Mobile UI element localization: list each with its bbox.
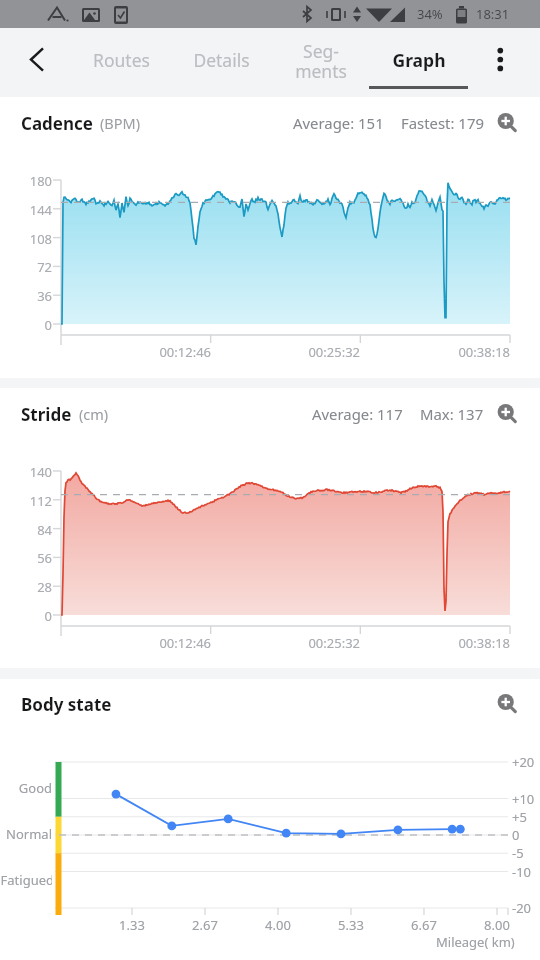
button[interactable]: Zoom in: [489, 108, 519, 138]
staticText: Routes: [93, 48, 150, 72]
staticText: Max: 137: [420, 404, 484, 424]
staticText: 8.00: [467, 916, 527, 934]
staticText: Seg- ments: [295, 39, 347, 84]
button[interactable]: More options: [476, 28, 528, 97]
staticText: (cm): [79, 404, 109, 424]
button[interactable]: Details: [172, 28, 271, 97]
staticText: Normal: [0, 825, 52, 843]
staticText: 0: [0, 316, 52, 334]
staticText: -5: [512, 844, 524, 862]
staticText: 00:38:18: [430, 634, 510, 652]
staticText: Average: 117: [312, 404, 403, 424]
staticText: 4.00: [248, 916, 308, 934]
staticText: 6.67: [394, 916, 454, 934]
staticText: 00:12:46: [131, 343, 211, 361]
staticText: 0: [0, 607, 52, 625]
staticText: Details: [193, 48, 250, 72]
staticText: 108: [0, 230, 52, 248]
staticText: Stride: [21, 403, 72, 426]
staticText: Cadence: [21, 112, 93, 135]
staticText: Body state: [21, 693, 112, 716]
staticText: +10: [512, 790, 535, 808]
staticText: -20: [512, 899, 532, 917]
staticText: 56: [0, 549, 52, 567]
staticText: 28: [0, 578, 52, 596]
staticText: 112: [0, 492, 52, 510]
staticText: 36: [0, 287, 52, 305]
staticText: Average: 151: [293, 113, 384, 133]
staticText: 180: [0, 172, 52, 190]
staticText: 0: [512, 826, 520, 844]
staticText: Mileage( km): [436, 933, 515, 951]
staticText: (BPM): [100, 113, 141, 133]
staticText: 5.33: [321, 916, 381, 934]
staticText: Good: [0, 779, 52, 797]
staticText: 1.33: [102, 916, 162, 934]
staticText: +5: [512, 808, 527, 826]
staticText: 00:25:32: [280, 634, 360, 652]
staticText: Graph: [392, 48, 446, 72]
button[interactable]: Back: [12, 28, 64, 97]
staticText: 140: [0, 463, 52, 481]
button[interactable]: Zoom in: [489, 689, 519, 719]
staticText: 144: [0, 201, 52, 219]
button[interactable]: Zoom in: [489, 399, 519, 429]
staticText: Fatigued: [0, 871, 52, 889]
staticText: Fastest: 179: [401, 113, 484, 133]
staticText: -10: [512, 863, 532, 881]
staticText: 34%: [417, 5, 443, 23]
button[interactable]: Seg- ments: [271, 28, 370, 97]
staticText: 18:31: [476, 5, 510, 23]
staticText: 00:25:32: [280, 343, 360, 361]
button[interactable]: Routes: [72, 28, 171, 97]
staticText: 00:38:18: [430, 343, 510, 361]
button[interactable]: Graph: [369, 28, 468, 97]
staticText: 00:12:46: [131, 634, 211, 652]
staticText: 72: [0, 258, 52, 276]
staticText: 2.67: [175, 916, 235, 934]
staticText: +20: [512, 753, 535, 771]
staticText: 84: [0, 521, 52, 539]
